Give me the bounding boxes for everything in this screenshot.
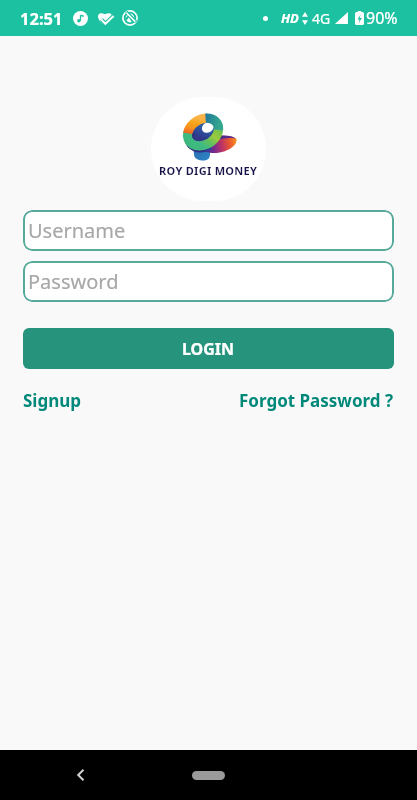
button[interactable]: Back	[66, 760, 96, 790]
staticText: 4G	[312, 9, 331, 28]
staticText: HD	[281, 9, 299, 27]
staticText: Password	[28, 268, 119, 295]
staticText: 90%	[366, 7, 398, 29]
staticText: Username	[28, 217, 126, 244]
button[interactable]: Forgot Password ?	[239, 387, 394, 414]
staticText: 12:51	[20, 7, 63, 29]
staticText: Forgot Password ?	[239, 389, 394, 412]
button[interactable]: Password	[23, 261, 394, 302]
button[interactable]: LOGIN	[23, 328, 394, 369]
staticText: ROY DIGI MONEY	[159, 163, 258, 178]
button[interactable]: Username	[23, 210, 394, 251]
button[interactable]: Home	[192, 771, 225, 780]
staticText: Signup	[23, 389, 82, 412]
staticText: LOGIN	[182, 338, 235, 360]
button[interactable]: Signup	[23, 387, 82, 414]
